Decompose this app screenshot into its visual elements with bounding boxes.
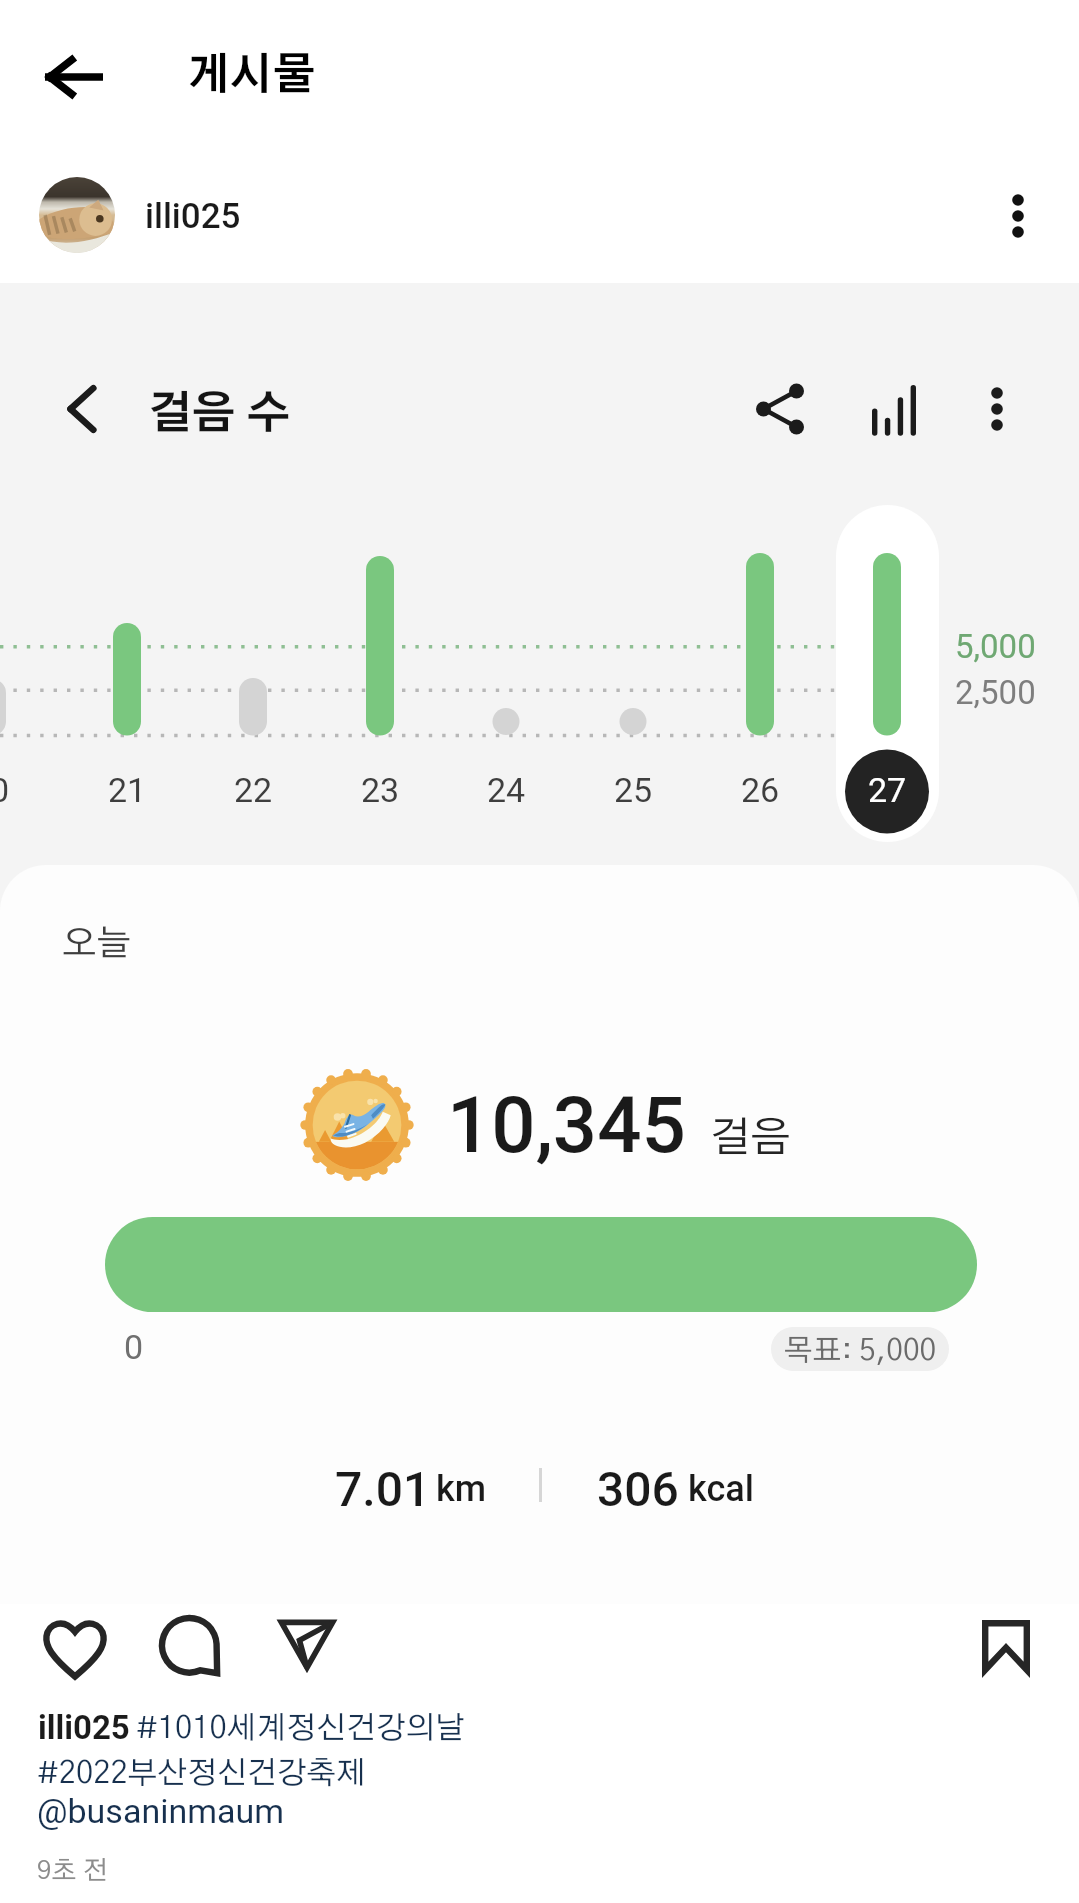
staticText: 걸음 수 — [148, 393, 291, 437]
staticText: 0 — [124, 1327, 144, 1367]
staticText: 목표: 5,000 — [784, 1336, 937, 1366]
staticText: 25 — [614, 770, 653, 810]
staticText: @busaninmaum — [37, 1791, 285, 1831]
staticText: #1010세계정신건강의날 — [136, 1713, 466, 1744]
staticText: 0 — [0, 770, 10, 810]
staticText: 5,000 — [955, 627, 1036, 666]
staticText: 오늘 — [62, 926, 132, 962]
staticText: 22 — [234, 770, 273, 810]
button[interactable]: Share — [262, 1600, 352, 1690]
staticText: illi025 — [38, 1708, 130, 1747]
staticText: 게시물 — [187, 55, 316, 98]
button[interactable]: Comment — [147, 1603, 237, 1693]
staticText: 9초 전 — [37, 1858, 108, 1884]
staticText: 23 — [361, 770, 400, 810]
button[interactable]: Like — [30, 1603, 120, 1693]
staticText: 21 — [108, 770, 147, 810]
staticText: km — [436, 1468, 487, 1510]
staticText: 27 — [868, 770, 907, 810]
button[interactable]: More options — [980, 178, 1056, 254]
staticText: 24 — [487, 770, 526, 810]
staticText: 걸음 — [710, 1117, 791, 1159]
staticText: #2022부산정신건강축제 — [37, 1758, 367, 1789]
staticText: 26 — [741, 770, 780, 810]
staticText: 2,500 — [955, 673, 1036, 712]
button[interactable]: Share — [738, 367, 822, 451]
button[interactable]: Back — [22, 25, 126, 129]
button[interactable]: More options — [955, 367, 1039, 451]
button[interactable]: Save — [961, 1601, 1051, 1691]
staticText: 7.01 — [335, 1461, 431, 1517]
button[interactable]: Back — [42, 367, 126, 451]
staticText: 306 — [597, 1461, 679, 1517]
staticText: 10,345 — [447, 1080, 686, 1171]
staticText: illi025 — [145, 196, 241, 237]
staticText: kcal — [688, 1468, 755, 1510]
button[interactable]: Trends — [852, 367, 936, 451]
